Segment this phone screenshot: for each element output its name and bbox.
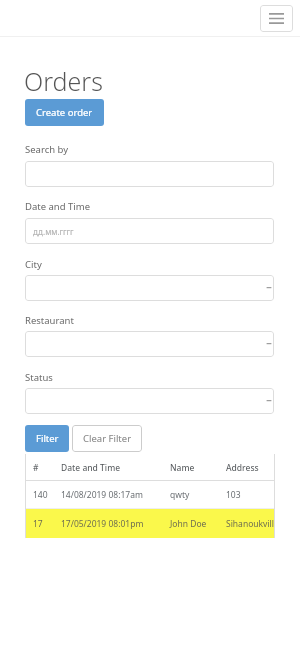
staticText: 140 [33,489,48,501]
button[interactable]: 17 [25,509,275,538]
staticText: # [33,462,39,474]
staticText: Search by [25,143,69,156]
staticText: 17 [33,518,43,530]
button[interactable]: Date and Time [25,218,274,244]
staticText: Sihanoukville [226,518,275,530]
button[interactable]: Menu [260,5,293,32]
staticText: Orders [24,64,103,98]
staticText: 103 Sereypheap [226,489,275,501]
staticText: Clear Filter [83,432,132,445]
button[interactable]: Create order [25,99,104,126]
staticText: Date and Time [25,200,91,213]
button[interactable]: Clear Filter [72,425,142,452]
staticText: qwty [170,489,190,501]
button[interactable]: City [25,275,274,301]
button[interactable]: Restaurant [25,331,274,357]
staticText: Address [226,462,275,474]
staticText: 17/05/2019 08:01pm [61,518,144,530]
staticText: Filter [36,432,59,445]
button[interactable]: 140 [25,481,275,509]
staticText: Restaurant [25,314,74,327]
button[interactable]: Filter [25,425,69,452]
staticText: City [25,258,42,271]
button[interactable]: Search by [25,161,274,187]
staticText: Status [25,371,53,384]
button[interactable]: Status [25,388,274,414]
staticText: 14/08/2019 08:17am [61,489,143,501]
staticText: John Doe [170,518,207,530]
staticText: Create order [36,106,93,119]
staticText: Date and Time [61,462,121,474]
staticText: дд.мм.гггг [33,226,74,237]
staticText: Name [170,462,195,474]
